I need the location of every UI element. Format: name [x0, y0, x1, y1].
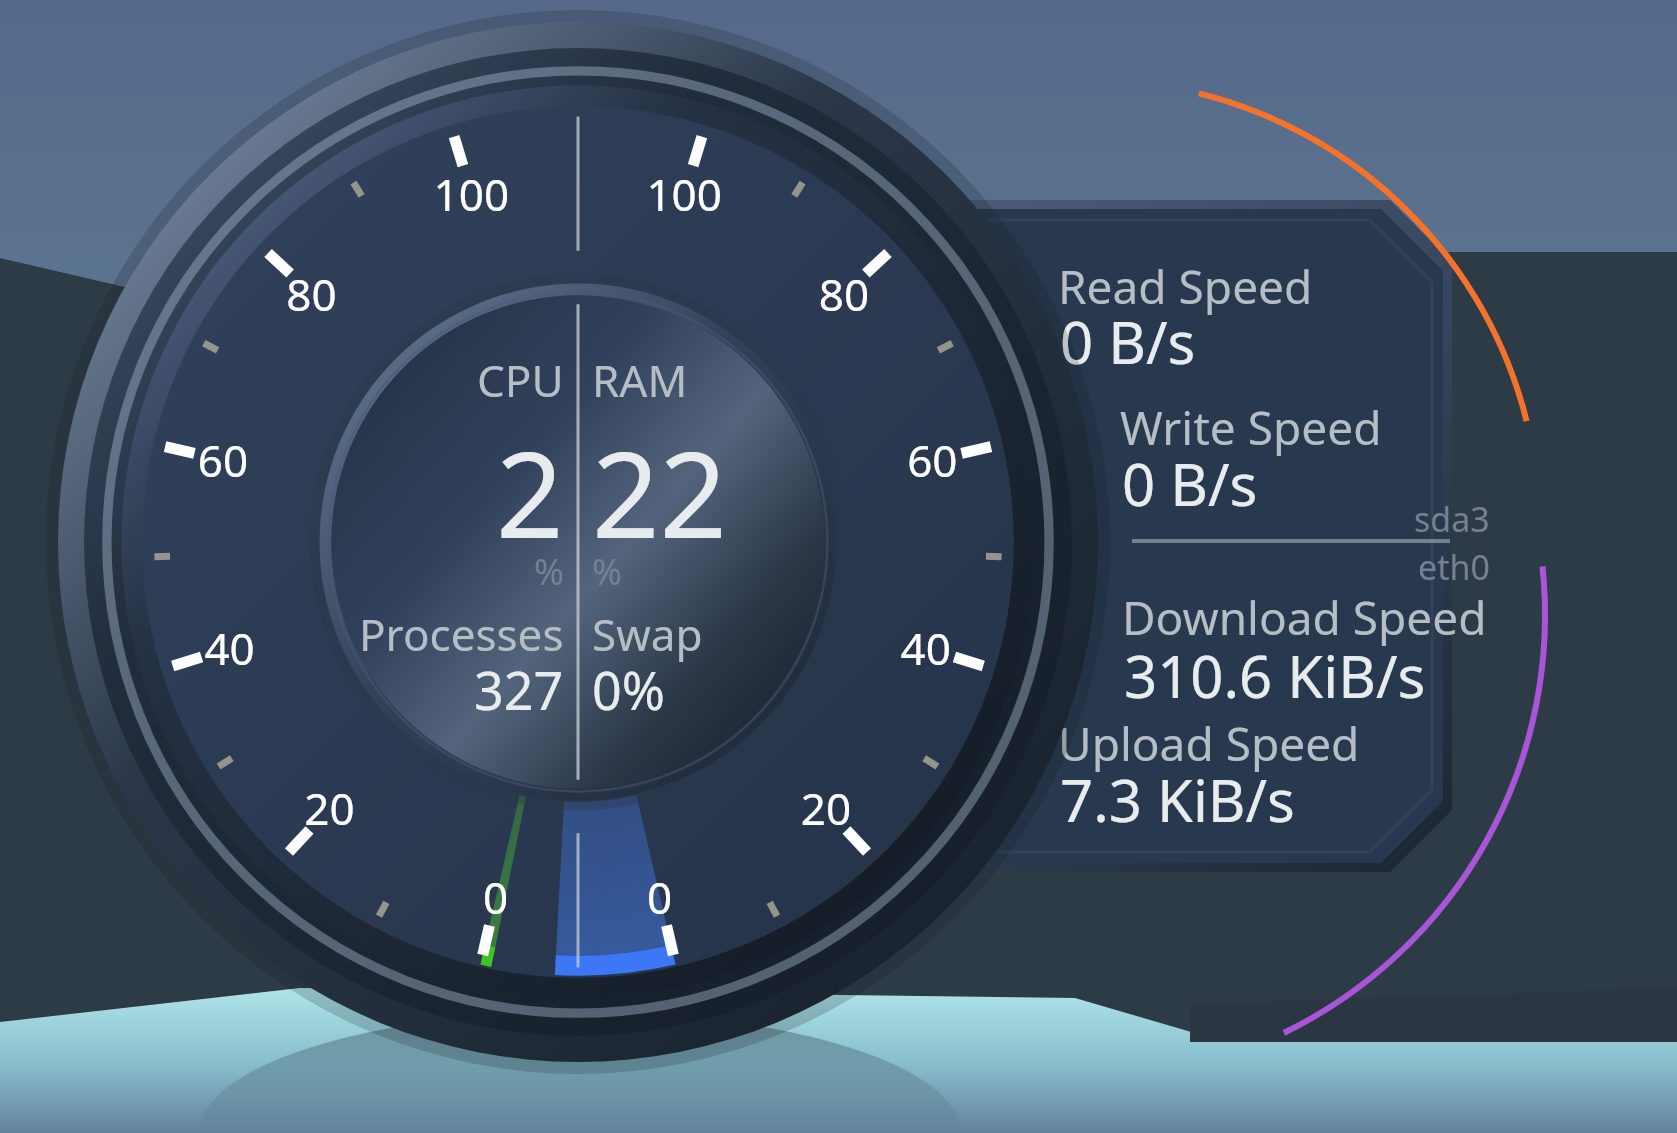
button[interactable]: System monitor gauge — [0, 0, 1677, 1133]
